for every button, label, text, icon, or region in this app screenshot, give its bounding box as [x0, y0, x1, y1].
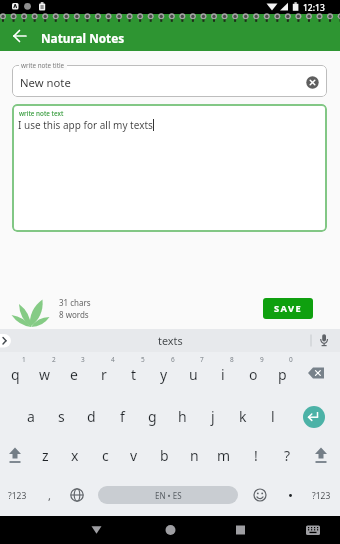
button[interactable]: i — [209, 360, 237, 388]
staticText: d — [87, 407, 96, 426]
staticText: x — [71, 446, 79, 465]
staticText: y — [160, 365, 168, 384]
button[interactable] — [303, 406, 325, 428]
button[interactable]: t — [120, 360, 148, 388]
staticText: New note — [20, 75, 71, 90]
button[interactable]: l — [259, 402, 287, 430]
staticText: 7 — [200, 355, 204, 364]
button[interactable]: c — [91, 441, 119, 469]
staticText: t — [131, 365, 137, 384]
staticText: i — [221, 365, 225, 384]
staticText: I use this app for all my texts — [18, 118, 153, 132]
staticText: ! — [254, 446, 258, 465]
staticText: z — [42, 446, 49, 465]
staticText: g — [148, 407, 157, 426]
button[interactable] — [12, 104, 327, 232]
staticText: 5 — [141, 355, 145, 364]
staticText: m — [217, 446, 231, 465]
button[interactable] — [156, 516, 184, 544]
staticText: SAVE — [274, 302, 303, 315]
staticText: k — [239, 407, 247, 426]
staticText: 8 — [230, 355, 234, 364]
button[interactable]: r — [90, 360, 118, 388]
staticText: 6 — [171, 355, 175, 364]
staticText: write note text — [19, 109, 64, 118]
button[interactable]: , — [35, 481, 63, 509]
staticText: r — [101, 365, 107, 384]
staticText: o — [249, 365, 258, 384]
button[interactable] — [226, 516, 254, 544]
staticText: ? — [284, 446, 291, 465]
button[interactable] — [82, 516, 110, 544]
button[interactable]: o — [239, 360, 267, 388]
button[interactable]: d — [77, 402, 105, 430]
button[interactable]: g — [138, 402, 166, 430]
staticText: j — [211, 407, 215, 426]
staticText: 12:13 — [303, 2, 325, 14]
button[interactable]: y — [150, 360, 178, 388]
staticText: s — [58, 407, 65, 426]
staticText: EN • ES — [155, 490, 182, 501]
button[interactable]: x — [61, 441, 89, 469]
staticText: p — [278, 365, 287, 384]
button[interactable]: w — [31, 360, 59, 388]
staticText: w — [39, 365, 51, 384]
button[interactable]: h — [168, 402, 196, 430]
button[interactable]: m — [210, 441, 238, 469]
staticText: Natural Notes — [41, 30, 125, 46]
button[interactable] — [6, 22, 34, 50]
staticText: l — [271, 407, 275, 426]
staticText: 1 — [22, 355, 26, 364]
staticText: 0 — [289, 355, 293, 364]
button[interactable]: ? — [273, 441, 301, 469]
button[interactable] — [12, 65, 327, 97]
button[interactable]: EN • ES — [98, 486, 238, 504]
staticText: 4 — [111, 355, 115, 364]
button[interactable]: v — [120, 441, 148, 469]
button[interactable]: s — [47, 402, 75, 430]
button[interactable]: a — [17, 402, 45, 430]
staticText: n — [190, 446, 199, 465]
staticText: texts — [158, 333, 183, 348]
button[interactable]: z — [31, 441, 59, 469]
staticText: ?123 — [312, 490, 331, 502]
staticText: 9 — [260, 355, 264, 364]
button[interactable]: q — [1, 360, 29, 388]
staticText: 8 words — [59, 309, 89, 320]
button[interactable]: ! — [242, 441, 270, 469]
button[interactable]: texts — [0, 329, 340, 352]
button[interactable]: n — [180, 441, 208, 469]
button[interactable]: b — [150, 441, 178, 469]
button[interactable]: k — [229, 402, 257, 430]
staticText: a — [27, 407, 35, 426]
button[interactable]: u — [179, 360, 207, 388]
staticText: 31 chars — [59, 297, 91, 308]
staticText: e — [70, 365, 78, 384]
staticText: c — [102, 446, 109, 465]
staticText: h — [178, 407, 187, 426]
button[interactable]: j — [199, 402, 227, 430]
staticText: ?123 — [8, 490, 27, 502]
staticText: v — [130, 446, 138, 465]
button[interactable] — [306, 76, 319, 89]
staticText: b — [160, 446, 169, 465]
staticText: u — [189, 365, 198, 384]
button[interactable]: f — [108, 402, 136, 430]
staticText: q — [11, 365, 20, 384]
button[interactable]: p — [268, 360, 296, 388]
staticText: 3 — [81, 355, 85, 364]
staticText: write note title — [21, 61, 65, 70]
staticText: 2 — [52, 355, 56, 364]
button[interactable]: e — [60, 360, 88, 388]
button[interactable]: SAVE — [263, 298, 313, 319]
staticText: , — [48, 488, 51, 503]
staticText: f — [120, 407, 125, 426]
